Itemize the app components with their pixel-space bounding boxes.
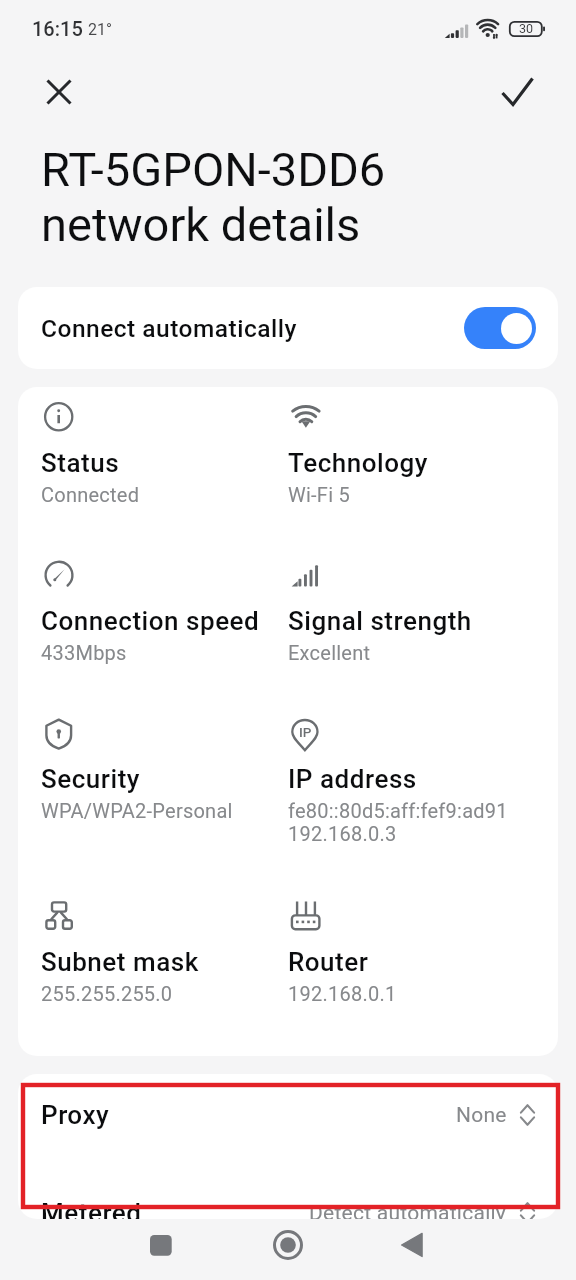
staticText: Status — [41, 448, 120, 478]
button[interactable]: Home — [255, 1212, 321, 1278]
button[interactable]: IP — [288, 718, 535, 845]
staticText: IP address — [288, 764, 417, 794]
button[interactable]: Technology — [288, 402, 535, 506]
staticText: WPA/WPA2-Personal — [41, 799, 233, 822]
staticText: 433Mbps — [41, 641, 127, 664]
staticText: 30 — [509, 21, 543, 36]
staticText: Excellent — [288, 641, 371, 664]
button[interactable]: Subnet mask — [41, 901, 288, 1005]
button[interactable]: Signal strength — [288, 560, 535, 664]
staticText: IP — [299, 724, 312, 740]
button[interactable]: Recent apps — [128, 1212, 194, 1278]
staticText: Router — [288, 947, 369, 977]
button[interactable]: Connect automatically — [18, 287, 558, 369]
staticText: RT-5GPON-3DD6 network details — [41, 142, 386, 252]
staticText: Detect automatically — [309, 1201, 507, 1219]
button[interactable]: Close — [34, 67, 83, 116]
staticText: Security — [41, 764, 140, 794]
button[interactable]: Proxy — [18, 1074, 558, 1156]
button[interactable]: Router — [288, 901, 535, 1005]
staticText: 192.168.0.3 — [288, 822, 397, 845]
staticText: Metered — [41, 1198, 142, 1219]
staticText: Connected — [41, 483, 140, 506]
staticText: 21° — [88, 20, 112, 39]
button[interactable]: Status — [41, 402, 288, 506]
staticText: Proxy — [41, 1100, 110, 1130]
staticText: Technology — [288, 448, 428, 478]
staticText: Signal strength — [288, 606, 472, 636]
staticText: Subnet mask — [41, 947, 199, 977]
staticText: 16:15 — [32, 17, 83, 40]
staticText: fe80::80d5:aff:fef9:ad91 — [288, 799, 508, 822]
button[interactable]: Connection speed — [41, 560, 288, 664]
staticText: None — [456, 1103, 507, 1128]
staticText: Wi-Fi 5 — [288, 483, 350, 506]
button[interactable]: Security — [41, 718, 288, 822]
button[interactable]: Metered — [18, 1172, 558, 1219]
staticText: Connect automatically — [41, 314, 297, 343]
button[interactable]: Confirm — [493, 67, 542, 116]
button[interactable]: Back — [379, 1212, 445, 1278]
staticText: Connection speed — [41, 606, 260, 636]
staticText: 192.168.0.1 — [288, 982, 397, 1005]
staticText: 255.255.255.0 — [41, 982, 173, 1005]
